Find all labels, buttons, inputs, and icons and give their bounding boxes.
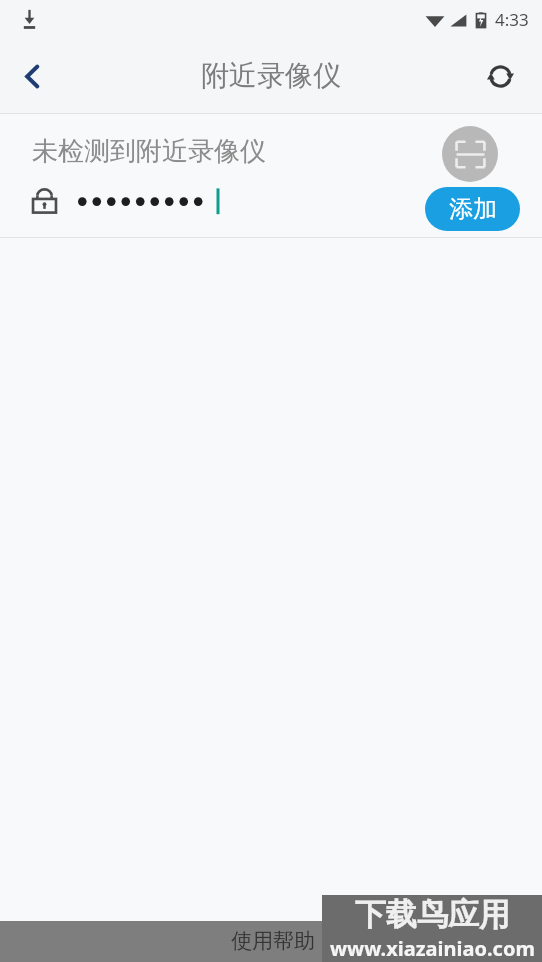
staticText: 4:33 [495, 8, 529, 31]
staticText: www.xiazainiao.com [330, 935, 535, 962]
button[interactable]: Scan QR code [442, 126, 498, 182]
staticText: 添加 [449, 194, 497, 224]
button[interactable]: Back [0, 44, 64, 108]
button[interactable]: Refresh [472, 48, 528, 104]
button[interactable]: 使用帮助 [231, 928, 315, 954]
staticText: 下载鸟应用 [355, 895, 510, 934]
button[interactable]: 添加 [425, 187, 520, 231]
staticText: 附近录像仪 [201, 58, 341, 93]
staticText: 未检测到附近录像仪 [32, 135, 266, 168]
